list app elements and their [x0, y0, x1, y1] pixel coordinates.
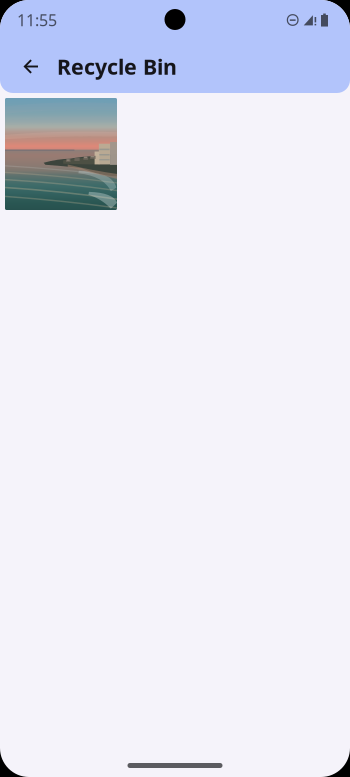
- staticText: Recycle Bin: [57, 52, 177, 81]
- button[interactable]: Back: [12, 44, 50, 88]
- staticText: 11:55: [17, 9, 57, 31]
